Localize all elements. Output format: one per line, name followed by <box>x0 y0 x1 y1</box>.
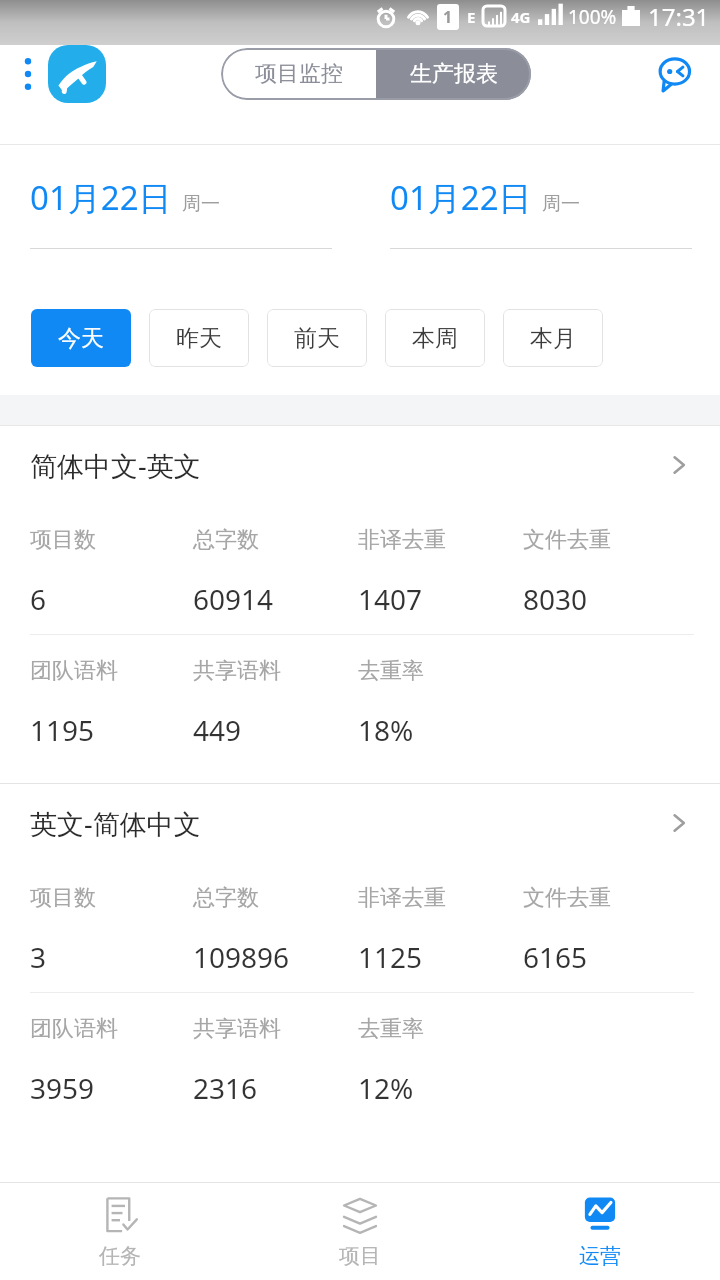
staticText: 总字数 <box>193 884 259 912</box>
button[interactable]: 本月 <box>503 309 603 367</box>
button[interactable]: 任务 <box>0 1183 240 1280</box>
staticText: 8030 <box>523 580 588 618</box>
button[interactable]: 昨天 <box>149 309 249 367</box>
button[interactable]: 项目监控 <box>221 48 376 100</box>
staticText: 109896 <box>193 938 290 976</box>
staticText: 总字数 <box>193 526 259 554</box>
button[interactable]: 今天 <box>31 309 131 367</box>
staticText: 18% <box>358 711 414 749</box>
button[interactable]: 01月22日 <box>30 145 332 249</box>
staticText: 项目 <box>339 1243 381 1269</box>
staticText: 团队语料 <box>30 657 118 685</box>
staticText: 6 <box>30 580 47 618</box>
button[interactable]: 01月22日 <box>390 145 692 249</box>
staticText: 本周 <box>412 324 458 353</box>
staticText: 100% <box>568 4 617 30</box>
button[interactable]: More options <box>18 46 38 102</box>
staticText: 周一 <box>182 192 220 216</box>
button[interactable]: 前天 <box>267 309 367 367</box>
staticText: 1407 <box>358 580 423 618</box>
staticText: 运营 <box>579 1243 621 1269</box>
staticText: 昨天 <box>176 324 222 353</box>
staticText: 文件去重 <box>523 884 611 912</box>
staticText: 前天 <box>294 324 340 353</box>
button[interactable]: Messages <box>646 46 702 102</box>
staticText: 1 <box>443 6 453 28</box>
button[interactable]: 英文-简体中文 <box>0 784 720 1141</box>
staticText: 今天 <box>58 324 104 353</box>
staticText: E <box>467 7 476 27</box>
staticText: 团队语料 <box>30 1015 118 1043</box>
staticText: 本月 <box>530 324 576 353</box>
staticText: 4G <box>511 7 531 27</box>
staticText: 项目数 <box>30 526 96 554</box>
button[interactable]: 运营 <box>480 1183 720 1280</box>
button[interactable]: 简体中文-英文 <box>0 426 720 783</box>
staticText: 1195 <box>30 711 95 749</box>
staticText: 任务 <box>99 1243 141 1269</box>
staticText: 项目监控 <box>255 60 343 88</box>
staticText: 去重率 <box>358 657 424 685</box>
button[interactable]: App logo <box>48 45 106 103</box>
staticText: 共享语料 <box>193 1015 281 1043</box>
staticText: 6165 <box>523 938 588 976</box>
staticText: 01月22日 <box>30 175 172 220</box>
staticText: 简体中文-英文 <box>30 447 201 484</box>
staticText: 01月22日 <box>390 175 532 220</box>
button[interactable]: 项目 <box>240 1183 480 1280</box>
staticText: 60914 <box>193 580 274 618</box>
staticText: 文件去重 <box>523 526 611 554</box>
staticText: 共享语料 <box>193 657 281 685</box>
staticText: 17:31 <box>648 0 710 33</box>
staticText: 12% <box>358 1069 414 1107</box>
staticText: 3959 <box>30 1069 95 1107</box>
staticText: 周一 <box>542 192 580 216</box>
button[interactable]: 本周 <box>385 309 485 367</box>
staticText: 非译去重 <box>358 884 446 912</box>
staticText: 生产报表 <box>410 60 498 88</box>
staticText: 1125 <box>358 938 423 976</box>
staticText: 3 <box>30 938 47 976</box>
staticText: 去重率 <box>358 1015 424 1043</box>
staticText: 非译去重 <box>358 526 446 554</box>
staticText: 449 <box>193 711 242 749</box>
staticText: 英文-简体中文 <box>30 805 201 842</box>
button[interactable]: 生产报表 <box>376 48 531 100</box>
staticText: 项目数 <box>30 884 96 912</box>
staticText: 2316 <box>193 1069 258 1107</box>
